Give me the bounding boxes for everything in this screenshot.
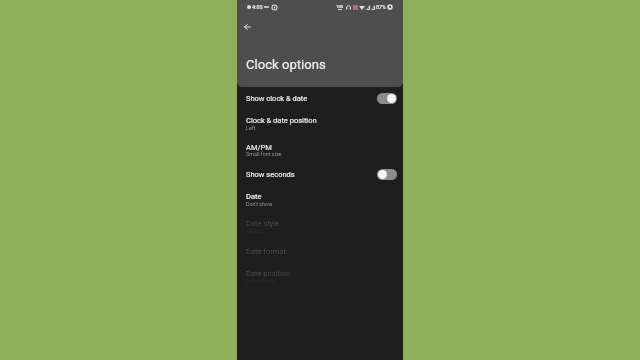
staticText: 4:05: [252, 4, 263, 10]
staticText: Date: [246, 192, 262, 201]
button[interactable]: Show seconds: [237, 162, 403, 188]
staticText: am: [264, 5, 270, 9]
button[interactable]: AM/PM: [237, 136, 403, 162]
staticText: Small font size: [246, 151, 282, 157]
staticText: Left of time: [246, 278, 274, 284]
staticText: 100: [336, 4, 344, 9]
staticText: Left: [246, 125, 256, 131]
button[interactable]: Date style: [237, 213, 403, 239]
staticText: Clock options: [246, 57, 326, 72]
staticText: Don't show: [246, 201, 273, 207]
staticText: 87%: [376, 4, 386, 10]
button[interactable]: Date format: [237, 238, 403, 264]
button[interactable]: Date position: [237, 264, 403, 290]
staticText: AM/PM: [246, 143, 272, 152]
staticText: Show clock & date: [246, 94, 308, 103]
button[interactable]: Back: [239, 19, 255, 35]
staticText: Date format: [246, 247, 286, 256]
staticText: Normal: [246, 228, 264, 234]
staticText: Clock & date position: [246, 116, 317, 125]
staticText: Date style: [246, 219, 279, 228]
button[interactable]: Show clock & date: [237, 87, 403, 111]
button[interactable]: Clock & date position: [237, 111, 403, 137]
staticText: Show seconds: [246, 170, 295, 179]
button[interactable]: Date: [237, 187, 403, 213]
staticText: Date position: [246, 269, 291, 278]
